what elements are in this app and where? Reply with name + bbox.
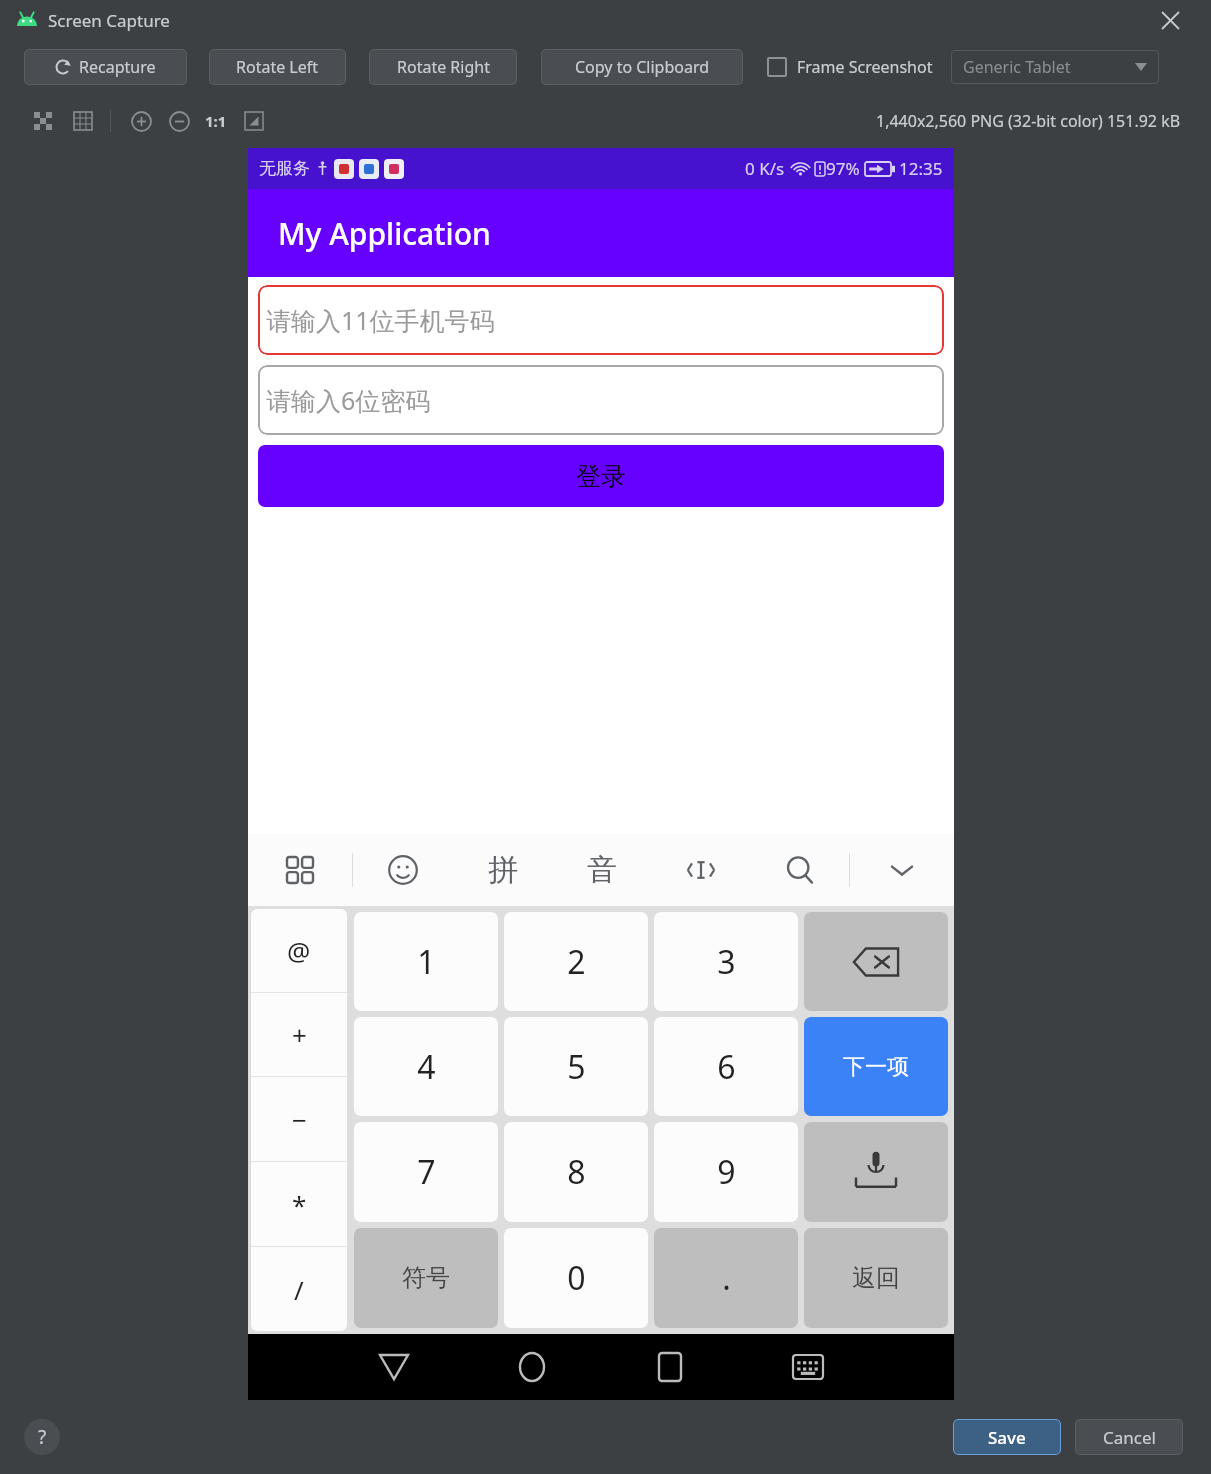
staticText: 无服务 [259,158,310,179]
staticText: + [292,1017,307,1052]
staticText: Recapture [79,56,156,78]
staticText: 1,440x2,560 PNG (32-bit color) 151.92 kB [876,110,1181,132]
button[interactable]: Search [778,848,822,892]
button[interactable]: Hide keyboard [880,848,924,892]
staticText: 97% [826,157,860,180]
staticText: 登录 [576,461,626,492]
staticText: 拼 [488,851,518,889]
button[interactable]: 请输入6位密码 [266,365,944,435]
button[interactable]: Switch keyboard [780,1339,836,1395]
button[interactable]: Close [1155,5,1185,35]
staticText: 5 [567,1045,586,1089]
button[interactable]: 下一项 [804,1017,948,1116]
button[interactable]: Move cursor [679,848,723,892]
button[interactable]: Frame Screenshot [767,47,933,87]
button[interactable]: Backspace [804,912,948,1011]
staticText: 6 [717,1045,736,1089]
staticText: 1:1 [205,111,227,131]
staticText: 3 [717,940,736,984]
staticText: Generic Tablet [963,56,1071,78]
staticText: Rotate Right [397,56,490,78]
button[interactable]: Generic Tablet [963,50,1147,84]
button[interactable]: Recapture [24,49,187,85]
button[interactable]: 拼 [480,843,526,897]
button[interactable]: 0 [504,1228,648,1328]
button[interactable]: 4 [354,1017,498,1116]
button[interactable]: Rotate Right [369,49,517,85]
staticText: @ [287,933,311,968]
button[interactable]: Zoom in [127,107,155,135]
button[interactable]: Keyboard layouts [280,850,320,890]
staticText: 返回 [852,1263,900,1293]
staticText: 下一项 [843,1053,909,1081]
staticText: Frame Screenshot [797,56,933,78]
button[interactable]: 9 [654,1122,798,1222]
staticText: 请输入11位手机号码 [266,303,495,337]
button[interactable]: 8 [504,1122,648,1222]
staticText: ? [38,1424,47,1450]
staticText: 2 [567,940,586,984]
button[interactable]: Transparency [30,108,56,134]
button[interactable]: 2 [504,912,648,1011]
staticText: 1 [417,940,436,984]
button[interactable]: @ [251,909,347,992]
button[interactable]: 6 [654,1017,798,1116]
button[interactable]: 3 [654,912,798,1011]
staticText: − [292,1102,307,1137]
button[interactable]: Cancel [1075,1419,1183,1455]
button[interactable]: 请输入11位手机号码 [266,285,944,355]
button[interactable]: 登录 [258,445,944,507]
button[interactable]: 7 [354,1122,498,1222]
button[interactable]: Fit to window [241,108,267,134]
staticText: / [294,1272,304,1307]
staticText: 8 [567,1150,586,1194]
button[interactable]: Help [24,1419,60,1455]
staticText: 符号 [402,1263,450,1293]
button[interactable]: + [251,993,347,1076]
button[interactable]: Grid [70,108,96,134]
button[interactable]: Home [504,1339,560,1395]
button[interactable]: * [251,1162,347,1246]
staticText: Save [988,1426,1026,1449]
staticText: 4 [417,1045,436,1089]
staticText: 12:35 [899,157,943,180]
button[interactable]: 1:1 [205,111,227,131]
button[interactable]: 1 [354,912,498,1011]
button[interactable]: Voice input and space [804,1122,948,1222]
staticText: Screen Capture [48,9,170,32]
staticText: Cancel [1103,1426,1156,1449]
button[interactable]: Zoom out [165,107,193,135]
button[interactable]: 音 [579,843,625,897]
button[interactable]: Save [953,1419,1061,1455]
staticText: 音 [587,851,617,889]
button[interactable]: Recents [642,1339,698,1395]
button[interactable]: 符号 [354,1228,498,1328]
staticText: * [292,1187,307,1222]
button[interactable]: Copy to Clipboard [541,49,743,85]
staticText: 请输入6位密码 [266,383,431,417]
staticText: Rotate Left [236,56,319,78]
staticText: . [722,1256,731,1300]
staticText: My Application [278,213,491,254]
staticText: 0 [567,1256,586,1300]
staticText: 9 [717,1150,736,1194]
button[interactable]: Emoji [381,848,425,892]
button[interactable]: 5 [504,1017,648,1116]
button[interactable]: Back [366,1339,422,1395]
button[interactable]: 返回 [804,1228,948,1328]
staticText: 7 [417,1150,436,1194]
staticText: 0 K/s [745,157,785,180]
button[interactable]: . [654,1228,798,1328]
button[interactable]: Rotate Left [209,49,346,85]
button[interactable]: − [251,1077,347,1161]
button[interactable]: / [251,1247,347,1331]
staticText: Copy to Clipboard [575,56,710,78]
